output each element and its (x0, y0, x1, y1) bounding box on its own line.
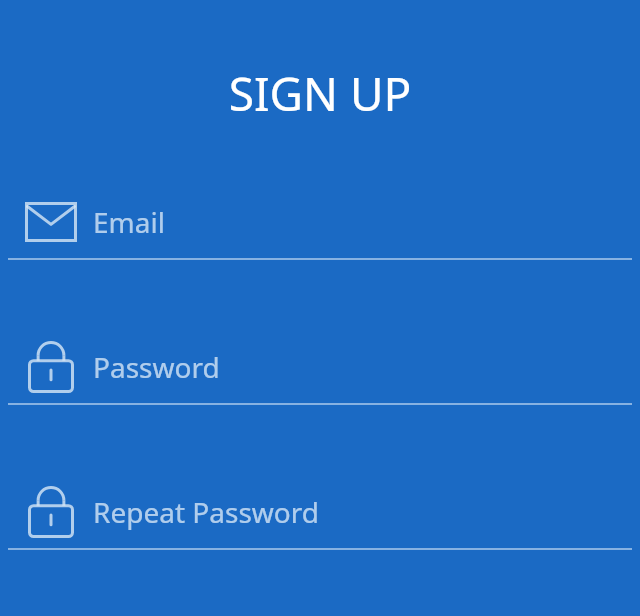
other: Email (24, 195, 78, 249)
staticText: Email (93, 203, 165, 241)
button[interactable]: Password (0, 331, 640, 405)
other: Password (24, 340, 78, 394)
button[interactable]: Email (0, 186, 640, 260)
staticText: Password (93, 348, 220, 386)
staticText: Repeat Password (93, 493, 319, 531)
staticText: SIGN UP (0, 62, 640, 125)
other: Repeat Password (24, 485, 78, 539)
button[interactable]: Repeat Password (0, 476, 640, 550)
